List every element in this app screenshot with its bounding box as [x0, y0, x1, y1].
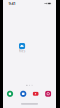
staticText: 9:41 — [8, 1, 15, 6]
button[interactable]: Messenger — [20, 91, 26, 97]
button[interactable]: YouTube — [33, 91, 39, 97]
staticText: Files — [19, 49, 25, 53]
button[interactable]: WhatsApp — [7, 91, 13, 97]
button[interactable]: Instagram — [45, 91, 51, 97]
button[interactable]: Files — [19, 43, 25, 52]
